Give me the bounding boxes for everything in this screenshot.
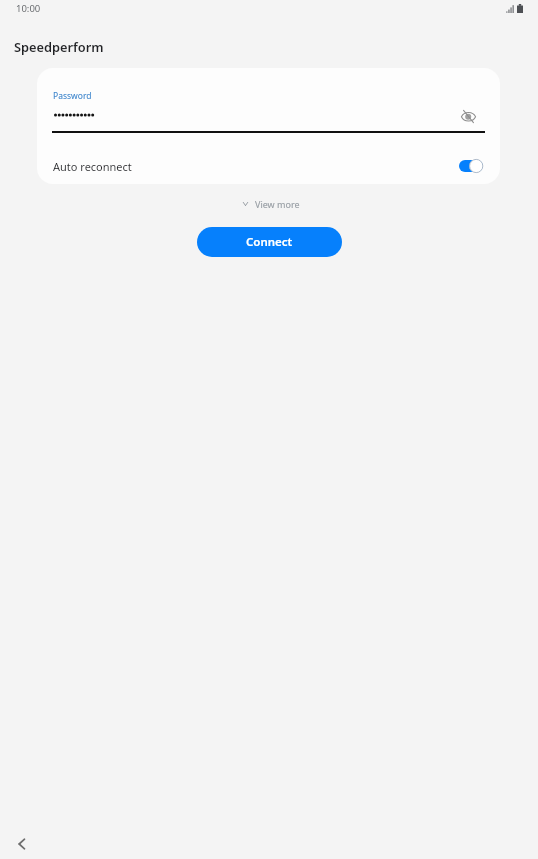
staticText: Connect (246, 234, 293, 250)
staticText: Password (53, 90, 92, 102)
staticText: View more (255, 198, 300, 210)
button[interactable]: Password (52, 82, 485, 133)
button[interactable]: Auto reconnect toggle (459, 158, 485, 174)
button[interactable]: Auto reconnect (37, 148, 500, 184)
staticText: Speedperform (14, 38, 104, 55)
button[interactable]: Show password (452, 104, 484, 128)
staticText: Auto reconnect (53, 159, 132, 174)
button[interactable]: Back (9, 831, 35, 857)
button[interactable]: View more (237, 194, 306, 214)
button[interactable]: Connect (197, 227, 342, 257)
staticText: 10:00 (16, 2, 41, 15)
